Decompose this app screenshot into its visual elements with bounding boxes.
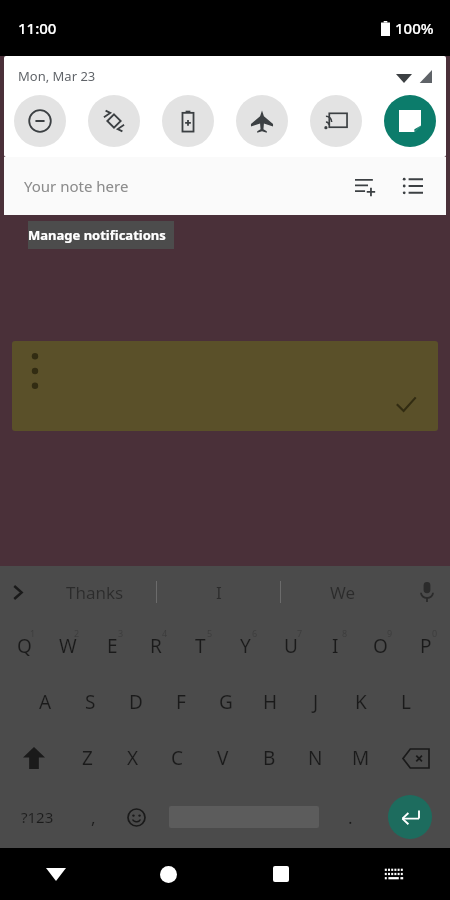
button[interactable]: E [90,618,134,674]
button[interactable]: Backspace [384,730,448,786]
button[interactable]: Do not disturb [14,95,66,147]
button[interactable]: Y [223,618,268,674]
staticText: 9 [387,627,393,639]
button[interactable]: Z [65,730,110,786]
staticText: 8 [342,627,348,639]
staticText: A [39,689,52,715]
button[interactable]: New note [384,95,436,147]
button[interactable]: J [293,674,338,730]
staticText: H [263,689,278,715]
button[interactable]: Add list item [348,169,382,203]
button[interactable]: O [358,618,403,674]
button[interactable]: Auto rotate [88,95,140,147]
button[interactable]: A [22,674,68,730]
button[interactable]: Shift [2,730,65,786]
button[interactable]: Manage notifications [28,221,174,249]
button[interactable]: ?123 [2,786,72,848]
staticText: T [195,633,206,659]
button[interactable]: R [134,618,178,674]
button[interactable]: Home [112,848,224,900]
button[interactable]: W [46,618,90,674]
button[interactable]: More suggestions [0,566,34,618]
button[interactable]: Cast screen [310,95,362,147]
staticText: D [129,689,143,715]
staticText: N [308,745,323,771]
staticText: I [332,633,339,659]
button[interactable]: F [158,674,203,730]
staticText: Q [17,633,32,659]
button[interactable]: Battery saver [162,95,214,147]
button[interactable]: Voice input [404,566,450,618]
button[interactable]: Q [2,618,46,674]
staticText: F [176,689,186,715]
button[interactable]: I [313,618,358,674]
button[interactable]: P [403,618,448,674]
staticText: J [313,689,319,715]
staticText: Y [240,633,251,659]
button[interactable]: D [113,674,158,730]
button[interactable]: L [383,674,428,730]
button[interactable]: We [281,566,404,618]
staticText: O [373,633,388,659]
staticText: We [330,581,356,604]
button[interactable]: Enter [372,786,448,848]
staticText: X [127,745,139,771]
staticText: I [216,581,222,604]
button[interactable]: Airplane mode [236,95,288,147]
staticText: P [420,633,432,659]
staticText: C [171,745,184,771]
staticText: B [263,745,276,771]
staticText: . [348,806,353,829]
button[interactable]: Thanks [34,566,156,618]
button[interactable]: Switch keyboard [337,848,450,900]
staticText: Z [82,745,93,771]
button[interactable]: V [200,730,246,786]
staticText: 100% [395,18,434,38]
staticText: Thanks [66,581,124,604]
button[interactable]: H [248,674,293,730]
staticText: V [217,745,229,771]
staticText: 11:00 [18,18,57,38]
staticText: 2 [74,627,80,639]
staticText: S [85,689,96,715]
button[interactable]: T [178,618,223,674]
button[interactable]: S [68,674,113,730]
staticText: K [355,689,367,715]
button[interactable]: Hide keyboard [0,848,112,900]
button[interactable]: Bulleted list [396,169,430,203]
staticText: E [107,633,118,659]
staticText: Manage notifications [28,226,166,244]
button[interactable]: K [338,674,383,730]
button[interactable]: Your note here [4,157,446,215]
staticText: 6 [252,627,258,639]
button[interactable]: Emoji [115,786,158,848]
staticText: , [91,806,96,829]
staticText: U [284,633,298,659]
button[interactable]: M [338,730,384,786]
staticText: W [59,633,77,659]
staticText: 0 [432,627,438,639]
staticText: R [150,633,162,659]
staticText: M [352,745,370,771]
button[interactable]: B [246,730,292,786]
staticText: G [219,689,233,715]
staticText: 7 [297,627,303,639]
button[interactable]: N [292,730,338,786]
button[interactable]: G [203,674,248,730]
button[interactable]: U [268,618,313,674]
button[interactable]: C [155,730,200,786]
staticText: 5 [207,627,213,639]
staticText: Your note here [24,176,129,196]
staticText: 4 [162,627,168,639]
button[interactable]: Space [158,786,329,848]
button[interactable]: X [110,730,155,786]
button[interactable]: Recents [224,848,337,900]
staticText: Mon, Mar 23 [18,67,96,85]
staticText: ?123 [21,807,54,827]
staticText: 3 [118,627,124,639]
